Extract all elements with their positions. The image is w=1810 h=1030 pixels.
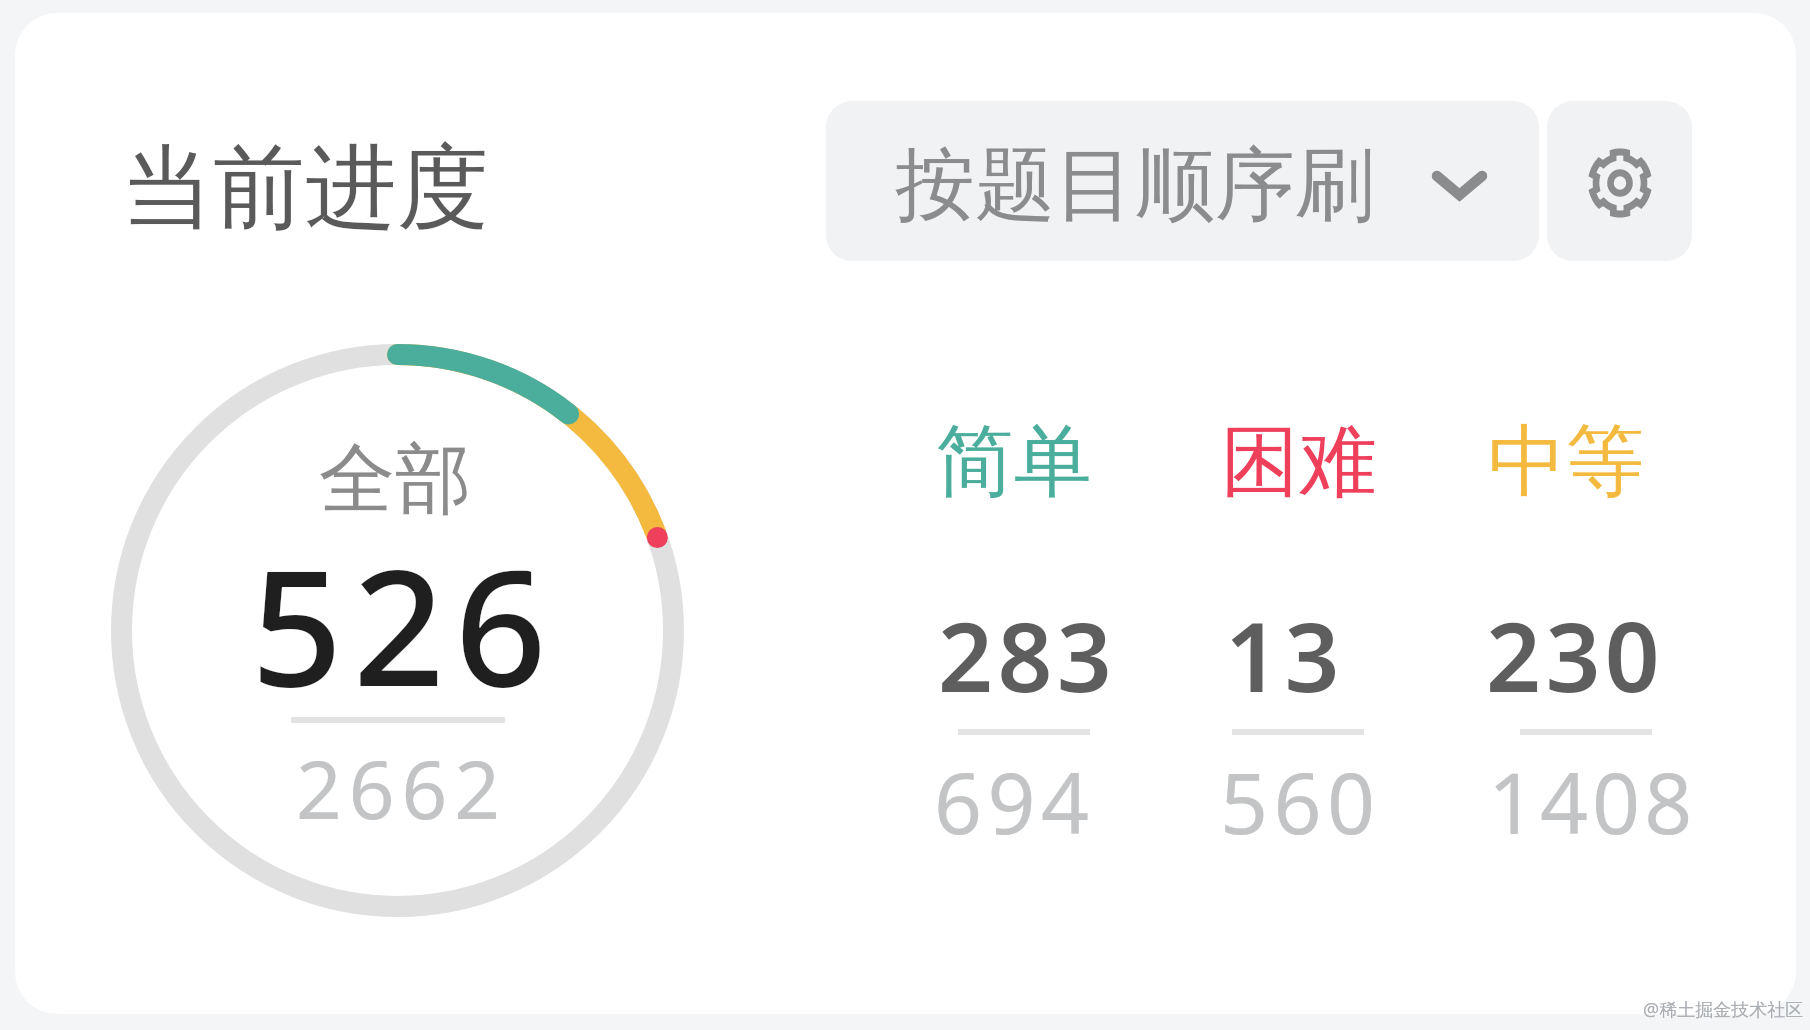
button[interactable]: 全部 526 / 2662 [205,420,590,830]
staticText: 694 [934,744,1095,858]
button[interactable]: 简单 [920,410,1110,840]
button[interactable]: 按题目顺序刷 [826,101,1539,261]
staticText: 2662 [296,733,508,842]
staticText: 1408 [1488,744,1697,858]
staticText: 全部 [319,432,471,528]
button[interactable]: 困难 [1205,410,1395,840]
button[interactable]: 中等 [1475,410,1700,840]
staticText: 按题目顺序刷 [895,135,1375,236]
staticText: 283 [938,589,1117,720]
staticText: 560 [1220,744,1381,858]
staticText: @稀土掘金技术社区 [1643,997,1804,1022]
button[interactable]: Settings [1547,101,1692,261]
staticText: 526 [251,515,558,733]
staticText: 中等 [1488,413,1644,511]
staticText: 230 [1486,589,1665,720]
staticText: 困难 [1221,413,1377,511]
staticText: 当前进度 [121,130,489,246]
staticText: 13 [1225,589,1344,720]
staticText: 简单 [936,413,1092,511]
